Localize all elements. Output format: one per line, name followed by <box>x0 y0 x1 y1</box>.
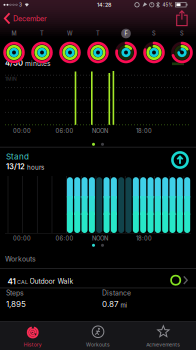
staticText: W <box>67 30 73 37</box>
staticText: M <box>11 30 16 37</box>
button[interactable] <box>170 150 190 170</box>
staticText: 41 <box>7 276 15 286</box>
staticText: 18:00 <box>136 127 152 134</box>
staticText: 18:00 <box>136 235 152 242</box>
staticText: 45% <box>162 2 172 7</box>
staticText: S <box>180 30 184 37</box>
button[interactable]: History <box>0 321 65 350</box>
staticText: Stand <box>6 152 29 161</box>
staticText: 00:00 <box>13 127 31 134</box>
button[interactable]: M <box>0 27 28 65</box>
staticText: Distance <box>102 289 131 297</box>
staticText: 14:28 <box>97 1 111 8</box>
button[interactable]: Workouts <box>65 321 131 350</box>
staticText: Steps <box>6 289 24 297</box>
button[interactable]: F <box>112 27 140 65</box>
button[interactable]: Achievements <box>131 321 196 350</box>
staticText: December <box>13 14 47 23</box>
staticText: 0.87 <box>102 299 119 309</box>
staticText: F <box>124 30 127 37</box>
staticText: 3 <box>19 2 22 8</box>
staticText: minutes <box>25 59 51 68</box>
staticText: NOON <box>92 235 108 242</box>
staticText: T <box>96 30 100 37</box>
button[interactable] <box>173 10 190 27</box>
staticText: CAL <box>17 279 28 285</box>
button[interactable]: T <box>84 27 112 65</box>
staticText: Workouts <box>5 255 36 263</box>
button[interactable]: S <box>140 27 168 65</box>
staticText: S <box>152 30 156 37</box>
staticText: History <box>24 342 42 348</box>
button[interactable]: S <box>168 27 196 65</box>
staticText: 13/12 <box>6 162 25 171</box>
button[interactable]: T <box>28 27 56 65</box>
button[interactable]: W <box>56 27 84 65</box>
staticText: Achievements <box>146 342 180 348</box>
staticText: 06:00 <box>55 235 73 242</box>
staticText: 00:00 <box>13 235 31 242</box>
staticText: 06:00 <box>55 127 73 134</box>
button[interactable]: 41 <box>0 269 196 288</box>
staticText: hours <box>27 164 44 171</box>
button[interactable]: December <box>0 9 66 27</box>
staticText: 4/30 <box>5 58 23 68</box>
staticText: Workouts <box>86 342 110 348</box>
staticText: 1MIN <box>5 76 17 82</box>
staticText: Outdoor Walk <box>29 277 73 285</box>
staticText: T <box>40 30 44 37</box>
staticText: NOON <box>92 127 108 134</box>
staticText: mi <box>120 302 126 309</box>
staticText: 1,895 <box>6 299 26 309</box>
